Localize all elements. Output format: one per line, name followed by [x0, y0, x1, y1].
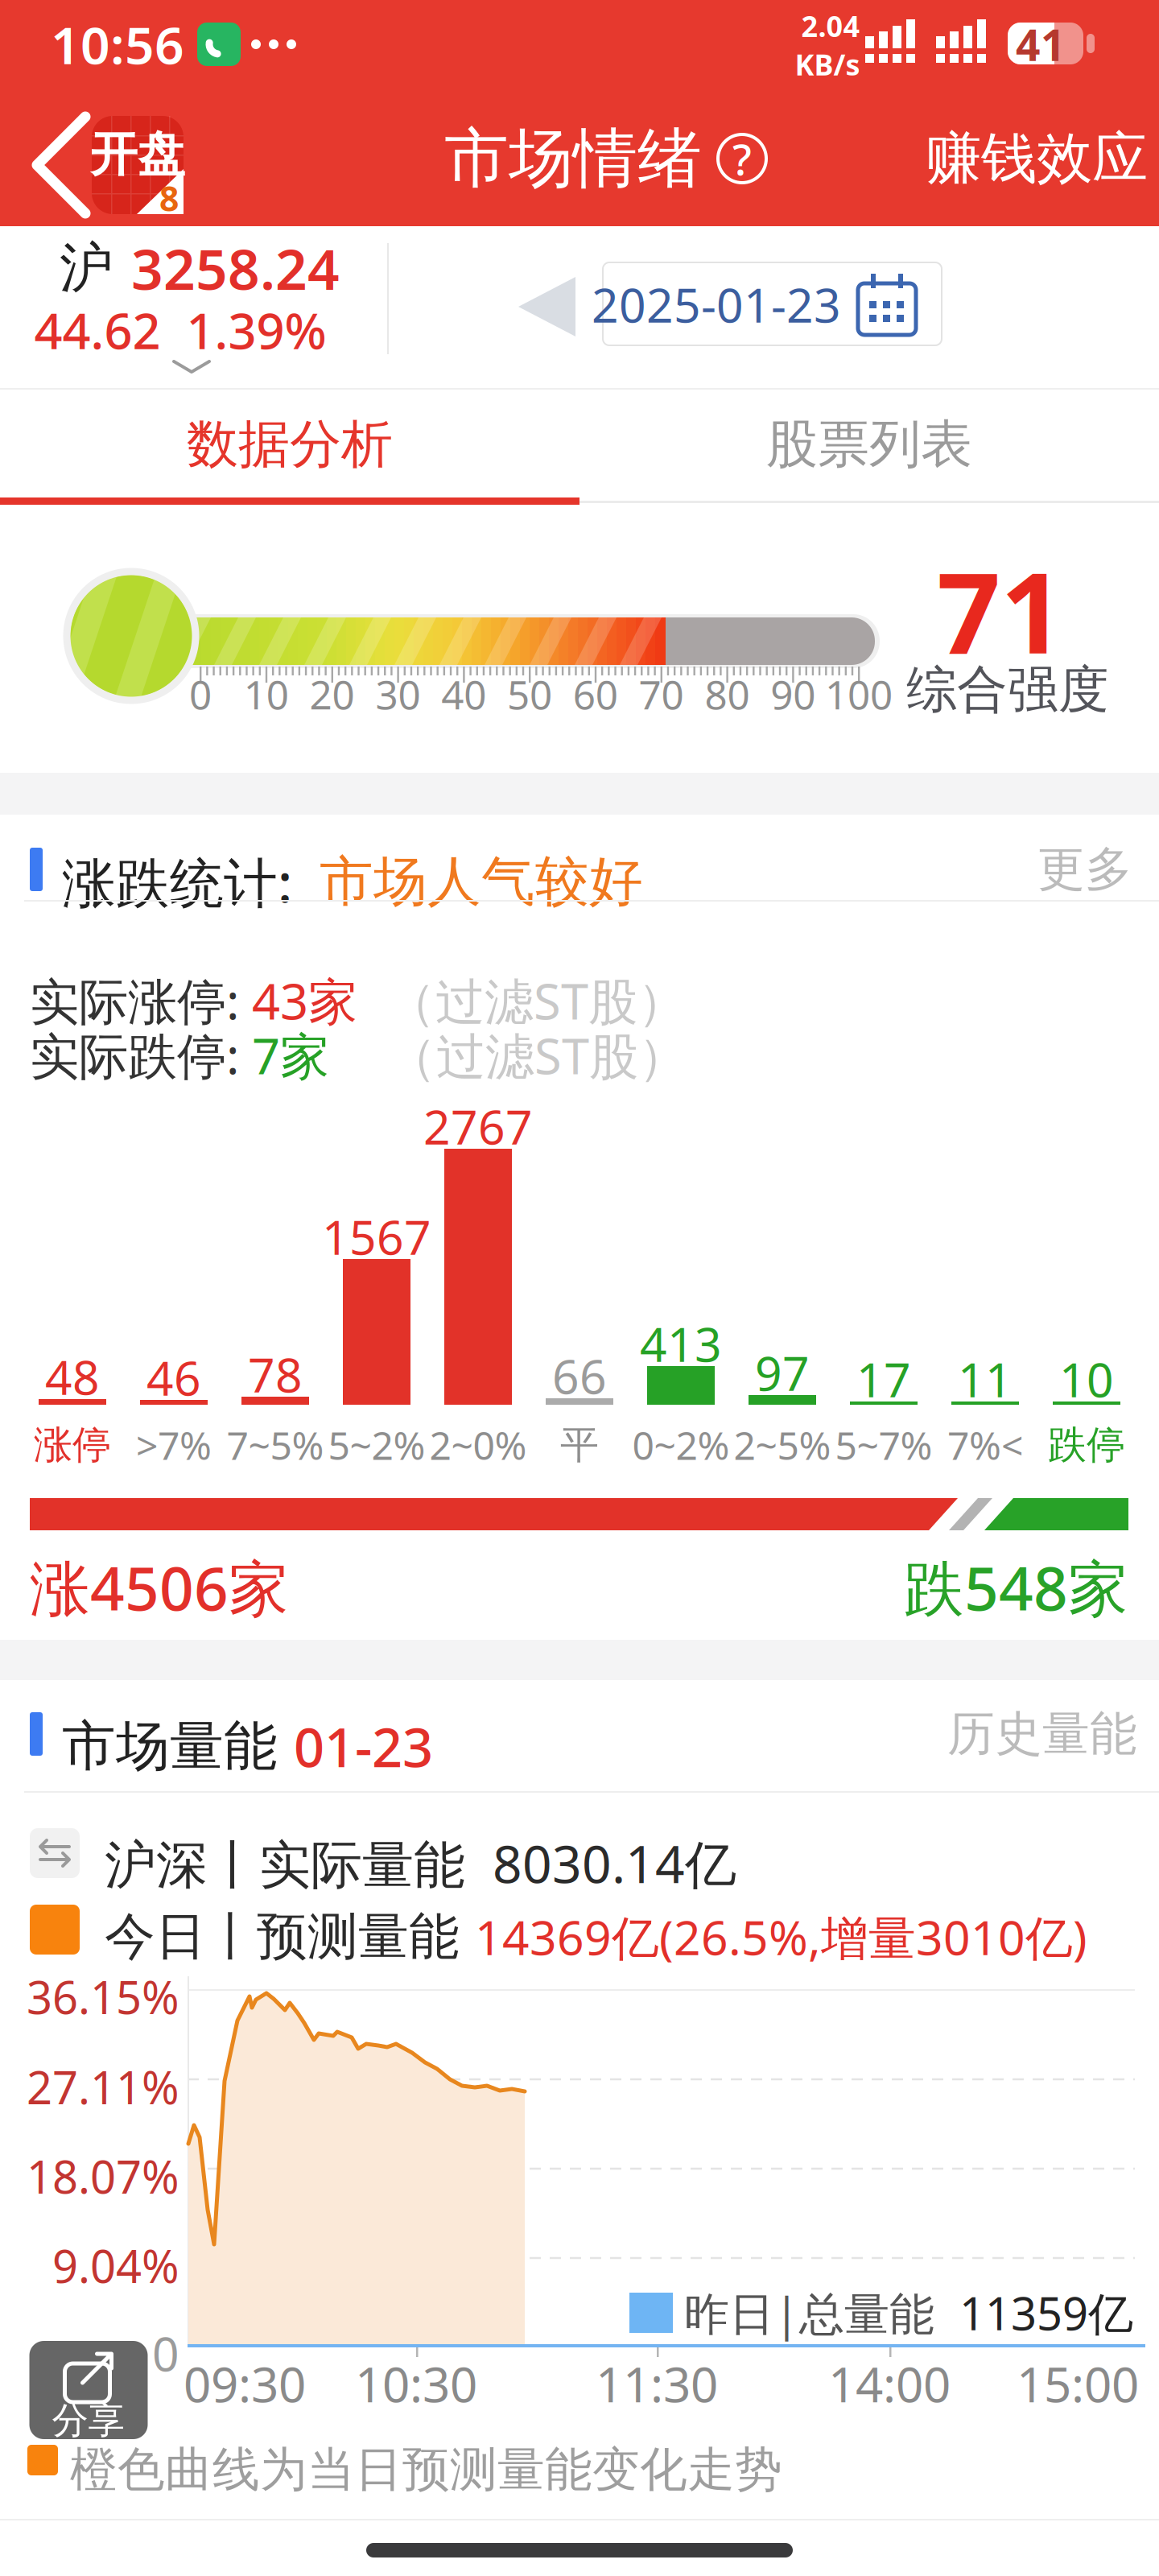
button[interactable]: Previous day — [0, 0, 1159, 2576]
staticText: 沪 — [60, 235, 113, 301]
staticText: 7%< — [947, 1419, 1023, 1471]
staticText: 3258.24 — [131, 231, 340, 305]
staticText: 昨日|总量能 — [684, 2283, 948, 2343]
staticText: 20 — [310, 668, 355, 720]
staticText: 40 — [441, 668, 486, 720]
button[interactable]: 赚钱效应 — [926, 124, 1148, 193]
staticText: ? — [732, 130, 752, 187]
staticText: 41 — [1016, 16, 1066, 73]
staticText: 01-23 — [294, 1711, 433, 1782]
staticText: 数据分析 — [187, 413, 393, 476]
button[interactable]: Back — [0, 0, 1159, 2576]
staticText: 66 — [552, 1344, 607, 1407]
button[interactable]: 股票列表 — [579, 390, 1159, 499]
staticText: 8 — [159, 175, 179, 221]
staticText: 7~5% — [227, 1419, 324, 1471]
button[interactable]: 数据分析 — [0, 390, 579, 499]
staticText: 70 — [639, 668, 684, 720]
staticText: 60 — [573, 668, 618, 720]
staticText: 9.04% — [52, 2235, 179, 2295]
staticText: 11:30 — [596, 2352, 718, 2416]
button[interactable]: 历史量能 — [947, 1705, 1137, 1763]
button[interactable]: Choose date — [0, 0, 1159, 2576]
staticText: 涨停 — [34, 1421, 111, 1469]
staticText: 历史量能 — [947, 1705, 1137, 1763]
staticText: 涨跌统计: — [62, 846, 320, 917]
staticText: 2025-01-23 — [592, 273, 841, 336]
staticText: 44.62 1.39% — [34, 297, 326, 363]
staticText: 14369亿(26.5%,增量3010亿) — [475, 1905, 1087, 1968]
staticText: 10 — [1059, 1348, 1114, 1410]
staticText: 71 — [937, 536, 1064, 684]
staticText: 50 — [507, 668, 552, 720]
button[interactable]: 更多 — [1037, 840, 1132, 898]
staticText: 跌548家 — [904, 1547, 1128, 1627]
staticText: 平 — [560, 1421, 599, 1469]
staticText: 43家 — [252, 968, 357, 1033]
staticText: 48 — [45, 1345, 100, 1408]
staticText: KB/s — [795, 45, 860, 84]
button[interactable]: 市场情绪 — [444, 119, 768, 198]
staticText: 沪深丨实际量能 8030.14亿 — [105, 1829, 736, 1897]
button[interactable]: 开盘 App — [92, 116, 184, 214]
staticText: 15:00 — [1017, 2352, 1139, 2416]
staticText: 0 — [189, 668, 212, 720]
staticText: 78 — [248, 1343, 303, 1405]
staticText: 30 — [375, 668, 420, 720]
staticText: 分享 — [52, 2398, 124, 2443]
staticText: 橙色曲线为当日预测量能变化走势 — [70, 2441, 782, 2499]
staticText: 综合强度 — [906, 659, 1109, 721]
staticText: 涨4506家 — [30, 1547, 289, 1627]
staticText: 80 — [705, 668, 750, 720]
staticText: 09:30 — [184, 2352, 306, 2416]
button[interactable]: 分享 — [29, 2341, 148, 2439]
staticText: 11 — [958, 1348, 1013, 1410]
staticText: 市场情绪 — [444, 119, 702, 198]
staticText: >7% — [136, 1419, 212, 1471]
staticText: 开盘 — [90, 126, 185, 184]
staticText: 413 — [640, 1312, 722, 1375]
staticText: 赚钱效应 — [926, 124, 1148, 193]
staticText: 10:30 — [355, 2352, 477, 2416]
staticText: 股票列表 — [766, 413, 972, 476]
staticText: 2~0% — [429, 1419, 527, 1471]
staticText: 2~5% — [734, 1419, 831, 1471]
staticText: 今日丨预测量能 — [105, 1906, 475, 1968]
staticText: 市场人气较好 — [320, 849, 643, 915]
staticText: 7家 — [252, 1022, 329, 1088]
staticText: 2767 — [423, 1095, 533, 1158]
staticText: 14:00 — [828, 2352, 951, 2416]
staticText: 0 — [152, 2322, 179, 2384]
staticText: 市场量能 — [62, 1713, 294, 1779]
staticText: 36.15% — [27, 1967, 179, 2027]
staticText: （过滤ST股） — [357, 968, 687, 1033]
button[interactable]: 沪 — [0, 0, 1159, 2576]
staticText: 100 — [825, 668, 893, 720]
staticText: 10 — [244, 668, 289, 720]
staticText: 实际跌停: — [30, 1022, 252, 1088]
staticText: （过滤ST股） — [329, 1022, 687, 1088]
staticText: 0~2% — [632, 1419, 730, 1471]
staticText: 11359亿 — [959, 2283, 1133, 2343]
staticText: 90 — [770, 668, 815, 720]
staticText: 46 — [146, 1346, 201, 1409]
staticText: 跌停 — [1048, 1421, 1125, 1469]
staticText: 2.04 — [801, 7, 860, 45]
staticText: 17 — [856, 1348, 911, 1410]
staticText: 97 — [755, 1341, 810, 1404]
staticText: 实际涨停: — [30, 968, 252, 1033]
staticText: 27.11% — [27, 2057, 179, 2117]
staticText: 10:56 — [51, 10, 184, 78]
staticText: 5~7% — [835, 1419, 932, 1471]
staticText: 5~2% — [328, 1419, 425, 1471]
staticText: 18.07% — [27, 2146, 179, 2206]
staticText: 更多 — [1037, 840, 1132, 898]
staticText: 1567 — [322, 1205, 431, 1268]
